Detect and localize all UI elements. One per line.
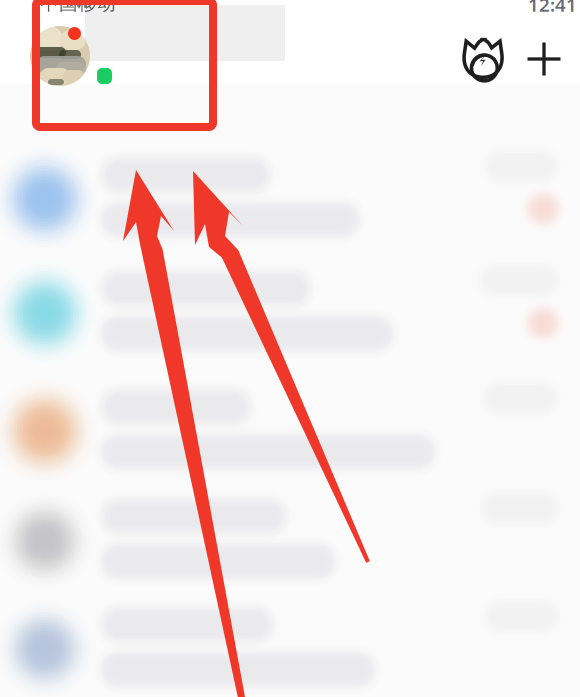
- staticText: 中国移动: [40, 0, 116, 15]
- button[interactable]: [0, 0, 580, 697]
- button[interactable]: [0, 0, 580, 697]
- button[interactable]: [0, 0, 580, 697]
- button[interactable]: Profile: [30, 26, 90, 86]
- button[interactable]: Mascot: [455, 30, 511, 86]
- staticText: 12:41: [528, 0, 577, 17]
- button[interactable]: [0, 0, 580, 697]
- button[interactable]: [0, 0, 580, 697]
- button[interactable]: Add: [519, 34, 569, 84]
